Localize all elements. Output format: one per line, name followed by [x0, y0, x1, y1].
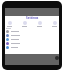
staticText: Settings — [26, 16, 39, 19]
button[interactable] — [5, 45, 59, 49]
button[interactable] — [5, 37, 59, 41]
button[interactable] — [51, 21, 58, 27]
button[interactable] — [21, 21, 28, 27]
button[interactable]: Add — [55, 56, 59, 60]
button[interactable] — [5, 33, 59, 37]
button[interactable] — [5, 29, 59, 33]
button[interactable] — [36, 21, 43, 27]
button[interactable] — [5, 41, 59, 45]
button[interactable] — [6, 21, 13, 27]
